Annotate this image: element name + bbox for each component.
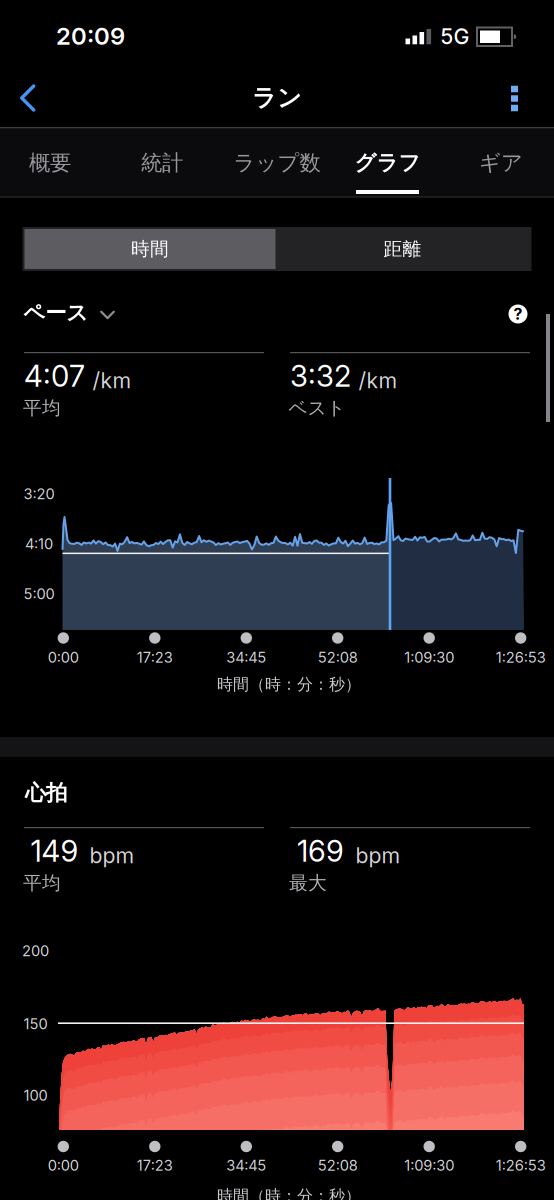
staticText: 時間 — [131, 237, 169, 260]
button[interactable]: グラフ — [354, 137, 420, 189]
button[interactable]: ラップ数 — [233, 137, 320, 189]
staticText: 5G — [440, 24, 469, 49]
button[interactable]: Back — [19, 84, 36, 112]
staticText: 169 — [297, 833, 344, 869]
staticText: 時間（時：分：秒） — [217, 1186, 361, 1200]
button[interactable]: 時間 — [24, 229, 275, 269]
staticText: 17:23 — [137, 1157, 173, 1174]
staticText: 34:45 — [226, 1157, 266, 1174]
staticText: ベスト — [288, 396, 345, 419]
button[interactable]: ペース — [23, 300, 115, 326]
staticText: 1:09:30 — [404, 649, 454, 666]
staticText: ラップ数 — [233, 150, 320, 176]
staticText: /km — [358, 368, 397, 393]
button[interactable]: 統計 — [141, 137, 183, 189]
staticText: 平均 — [23, 871, 61, 894]
staticText: グラフ — [354, 150, 420, 176]
staticText: 時間（時：分：秒） — [217, 675, 361, 694]
button[interactable]: More — [511, 86, 518, 111]
staticText: 5:00 — [23, 585, 54, 603]
staticText: ? — [513, 304, 522, 324]
button[interactable]: 距離 — [277, 229, 528, 269]
staticText: 3:32 — [290, 358, 351, 394]
button[interactable]: 概要 — [29, 137, 71, 189]
staticText: 1:26:53 — [496, 649, 546, 666]
staticText: bpm — [355, 843, 400, 868]
staticText: 平均 — [23, 396, 61, 419]
staticText: 20:09 — [56, 21, 125, 50]
button[interactable]: Help — [508, 304, 527, 323]
staticText: 最大 — [289, 871, 327, 894]
staticText: 100 — [23, 1087, 47, 1104]
staticText: 52:08 — [318, 649, 358, 666]
staticText: bpm — [89, 843, 134, 868]
staticText: 概要 — [29, 150, 71, 176]
staticText: 17:23 — [137, 649, 173, 666]
staticText: 1:09:30 — [404, 1157, 454, 1174]
staticText: 0:00 — [48, 649, 79, 666]
staticText: 3:20 — [23, 485, 54, 503]
staticText: 1:26:53 — [496, 1157, 546, 1174]
staticText: ペース — [23, 300, 88, 326]
staticText: ラン — [252, 83, 302, 113]
staticText: 0:00 — [48, 1157, 79, 1174]
staticText: /km — [92, 368, 131, 393]
staticText: ギア — [479, 150, 523, 176]
staticText: 距離 — [383, 237, 421, 260]
staticText: 34:45 — [226, 649, 266, 666]
staticText: 4:10 — [25, 535, 53, 553]
staticText: 150 — [23, 1015, 47, 1033]
staticText: 心拍 — [25, 780, 67, 806]
staticText: 200 — [22, 942, 49, 960]
staticText: 統計 — [141, 150, 183, 176]
staticText: 4:07 — [24, 358, 85, 394]
staticText: 149 — [30, 833, 78, 869]
button[interactable]: ギア — [479, 137, 523, 189]
staticText: 52:08 — [318, 1157, 358, 1174]
